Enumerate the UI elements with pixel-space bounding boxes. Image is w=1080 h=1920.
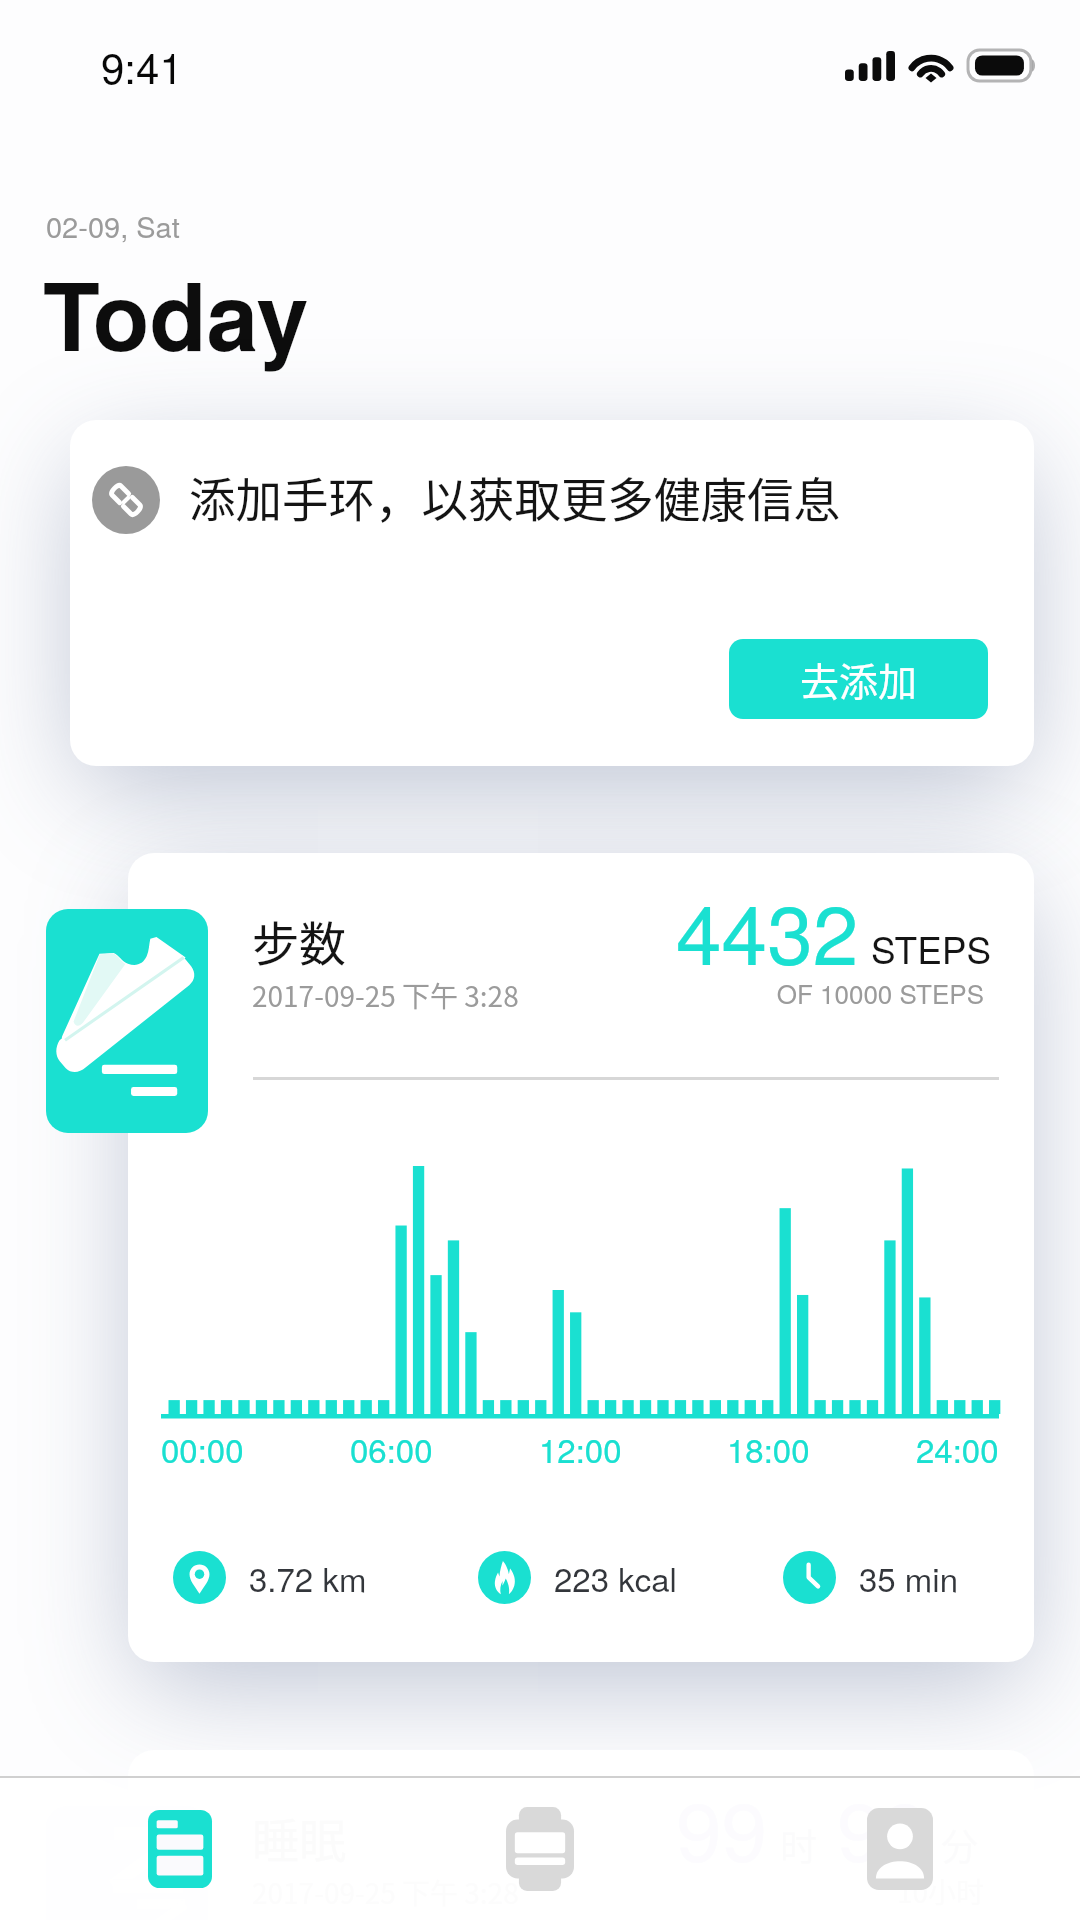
staticText: 9:41	[101, 36, 183, 96]
staticText: 35 min	[859, 1554, 959, 1601]
button[interactable]: 添加手环，以获取更多健康信息	[70, 420, 1034, 766]
staticText: 4432	[676, 871, 859, 988]
staticText: 00:00	[161, 1425, 244, 1472]
staticText: OF 10000 STEPS	[655, 974, 984, 1011]
button[interactable]: Profile	[720, 1778, 1080, 1920]
button[interactable]: 睡眠	[128, 1750, 1034, 1920]
button[interactable]: 3.72 km	[173, 1551, 367, 1604]
staticText: 99	[676, 1768, 768, 1885]
staticText: 12:00	[539, 1425, 622, 1472]
staticText: 223 kcal	[554, 1554, 677, 1601]
staticText: 18:00	[727, 1425, 810, 1472]
staticText: 3.72 km	[249, 1554, 367, 1601]
staticText: 02-09, Sat	[46, 205, 180, 247]
staticText: 06:00	[350, 1425, 433, 1472]
staticText: 24:00	[916, 1425, 999, 1472]
staticText: 去添加	[800, 651, 918, 707]
staticText: 99	[837, 1768, 929, 1885]
staticText: STEPS	[871, 922, 992, 975]
button[interactable]: 去添加	[729, 639, 988, 719]
button[interactable]: Today	[0, 1778, 360, 1920]
staticText: 添加手环，以获取更多健康信息	[189, 463, 840, 530]
button[interactable]: 223 kcal	[478, 1551, 677, 1604]
staticText: 步数	[252, 906, 346, 974]
button[interactable]: 步数	[128, 853, 1034, 1662]
button[interactable]: Device	[360, 1778, 720, 1920]
staticText: Today	[43, 246, 309, 379]
staticText: 2017-09-25 下午 3:28	[252, 975, 519, 1016]
button[interactable]: 35 min	[783, 1551, 959, 1604]
staticText: 10小时	[768, 1871, 984, 1912]
